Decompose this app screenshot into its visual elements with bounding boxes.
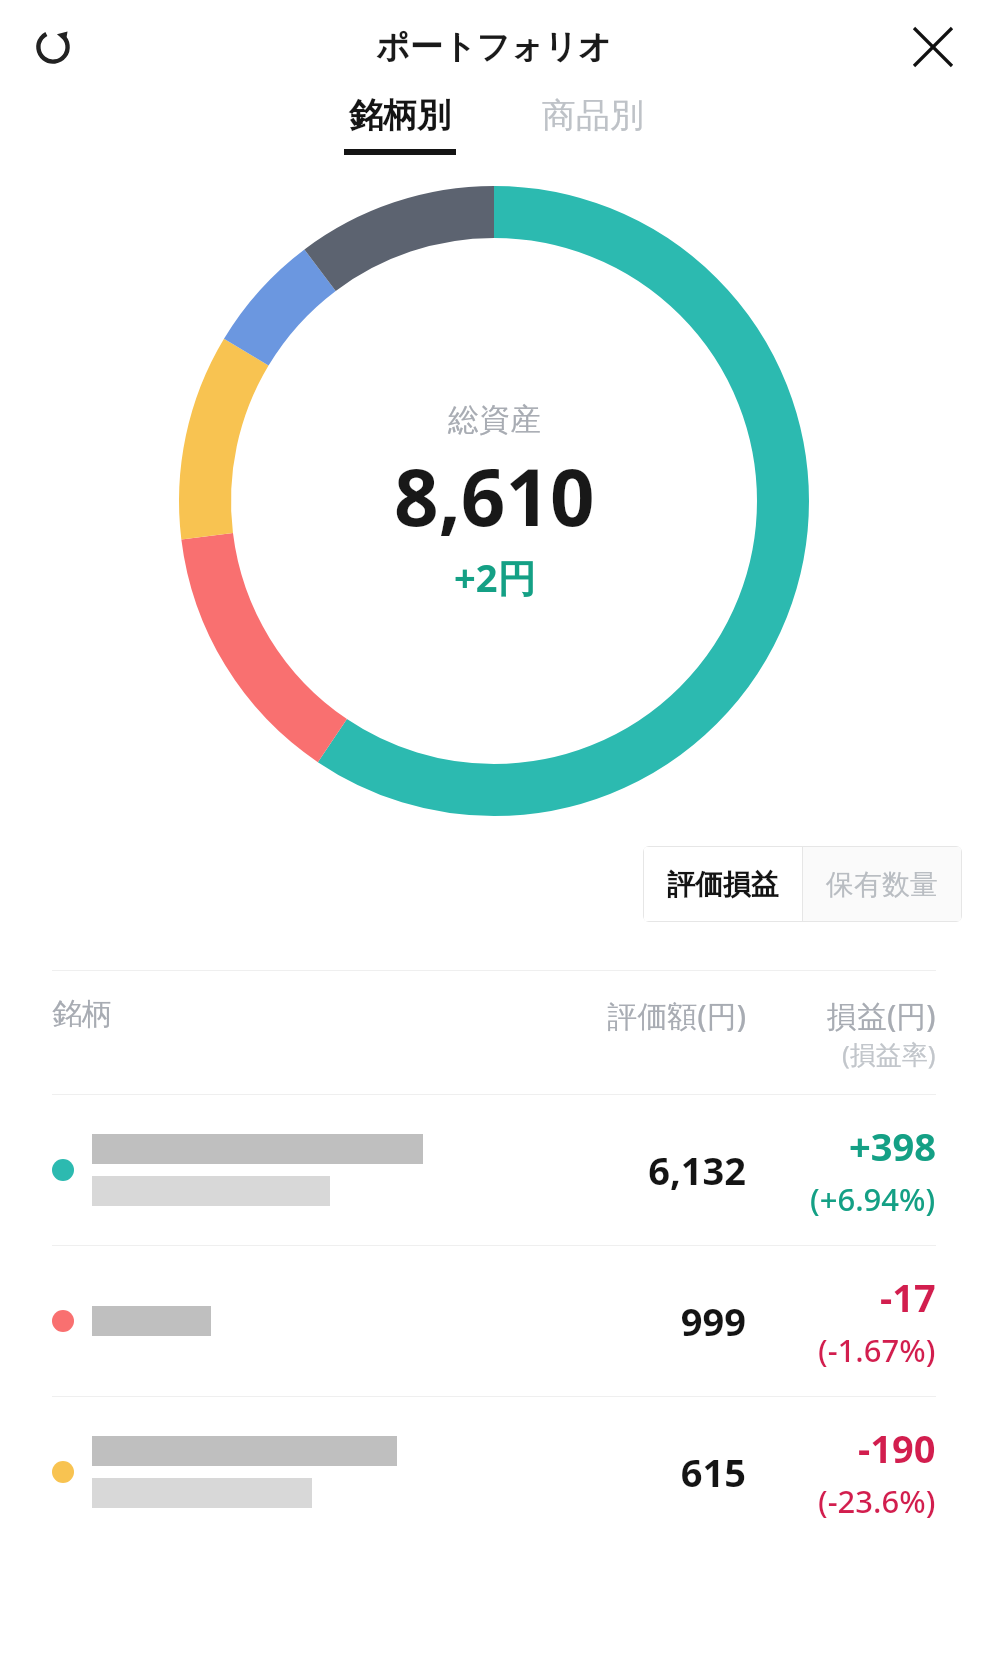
staticText: 評価損益 (667, 867, 779, 902)
staticText: +398 (849, 1120, 936, 1172)
staticText: 銘柄 (52, 995, 516, 1033)
staticText: (-23.6%) (818, 1480, 936, 1522)
staticText: 8,610 (394, 443, 595, 549)
staticText: 総資産 (448, 400, 541, 439)
staticText: -190 (858, 1422, 936, 1474)
staticText: 999 (516, 1295, 746, 1347)
button[interactable]: 評価損益 (644, 847, 802, 921)
button[interactable]: 銘柄別 (334, 94, 466, 155)
staticText: 6,132 (516, 1144, 746, 1196)
button[interactable]: Close (902, 16, 964, 78)
staticText: 評価額(円) (516, 995, 746, 1036)
staticText: -17 (880, 1271, 936, 1323)
staticText: 損益(円) (827, 995, 936, 1036)
staticText: 保有数量 (826, 867, 938, 902)
staticText: (+6.94%) (810, 1178, 936, 1220)
staticText: 615 (516, 1446, 746, 1498)
staticText: 商品別 (542, 94, 644, 137)
staticText: 銘柄別 (349, 94, 451, 137)
button[interactable]: 商品別 (532, 94, 654, 149)
button[interactable]: Refresh (22, 16, 84, 78)
button[interactable]: 6,132 (0, 1095, 988, 1245)
staticText: (-1.67%) (818, 1329, 936, 1371)
button[interactable]: 999 (0, 1246, 988, 1396)
staticText: ポートフォリオ (376, 26, 612, 68)
staticText: (損益率) (842, 1036, 936, 1072)
staticText: +2円 (454, 551, 536, 603)
button[interactable]: 保有数量 (803, 847, 961, 921)
button[interactable]: 615 (0, 1397, 988, 1547)
